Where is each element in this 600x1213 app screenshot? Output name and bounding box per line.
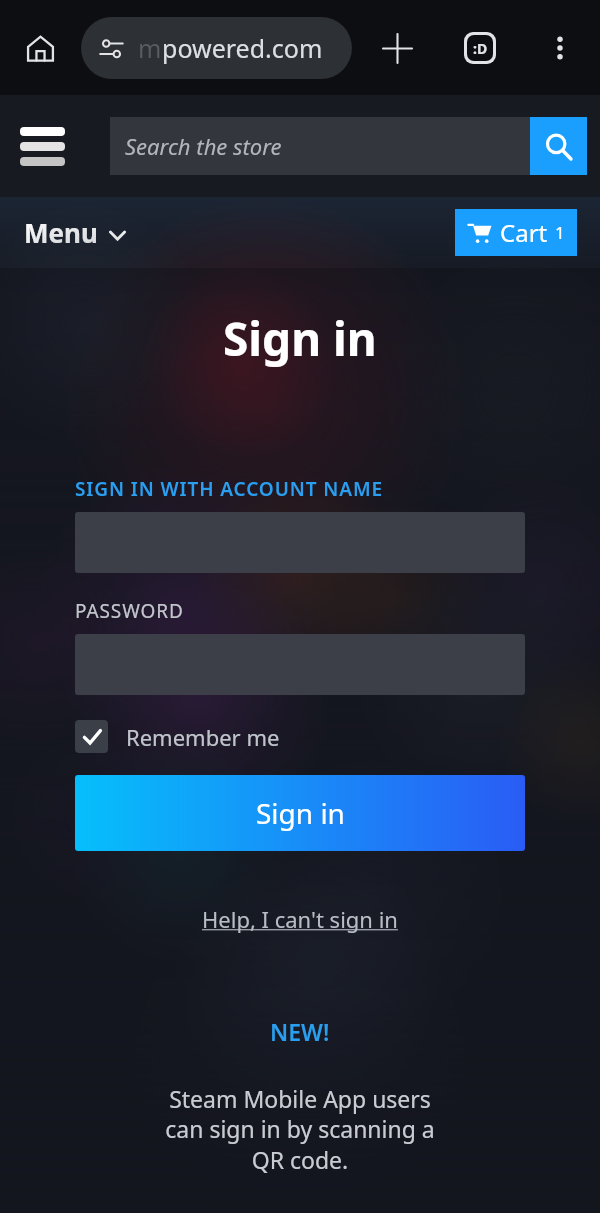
button[interactable]: Sign in [75, 775, 525, 851]
staticText: Search the store [125, 131, 282, 161]
staticText: Sign in [223, 307, 377, 370]
staticText: Menu [24, 215, 98, 250]
staticText: PASSWORD [75, 598, 184, 624]
button[interactable]: Search [530, 117, 587, 175]
staticText: 1 [555, 221, 565, 244]
staticText: Help, I can't sign in [202, 904, 398, 934]
button[interactable]: m [81, 17, 352, 79]
button[interactable]: Menu [24, 215, 126, 250]
button[interactable]: Help, I can't sign in [202, 904, 398, 934]
staticText: powered.com [162, 31, 323, 65]
staticText: Sign in [256, 794, 345, 832]
button[interactable]: Search the store [110, 117, 530, 175]
button[interactable]: Cart [455, 209, 577, 256]
button[interactable]: Switch tabs [453, 21, 507, 75]
button[interactable]: More options [533, 21, 587, 75]
staticText: SIGN IN WITH ACCOUNT NAME [75, 476, 383, 502]
staticText: Steam Mobile App users can sign in by sc… [155, 1083, 445, 1176]
button[interactable]: New tab [370, 21, 424, 75]
staticText: Cart [500, 216, 548, 249]
staticText: :D [473, 39, 488, 58]
button[interactable]: Remember me [75, 720, 280, 753]
button[interactable]: Open navigation menu [20, 127, 65, 166]
staticText: Remember me [126, 722, 280, 752]
staticText: m [138, 31, 162, 65]
button[interactable]: Home [13, 21, 67, 75]
staticText: NEW! [270, 1016, 330, 1047]
